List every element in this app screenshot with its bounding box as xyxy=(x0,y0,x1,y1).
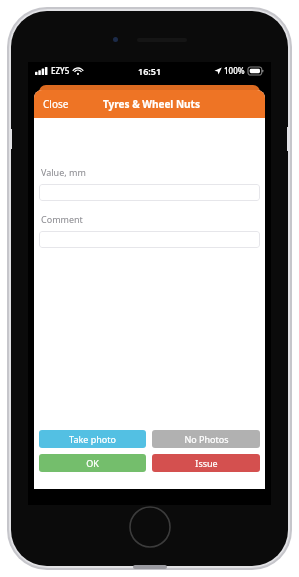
staticText: Issue xyxy=(195,457,218,469)
button[interactable] xyxy=(39,184,260,201)
button[interactable]: Close xyxy=(34,91,78,117)
staticText: Close xyxy=(43,97,69,111)
button[interactable] xyxy=(39,231,260,248)
staticText: EZY5 xyxy=(51,65,70,76)
staticText: Comment xyxy=(41,213,83,225)
staticText: Take photo xyxy=(69,433,116,445)
staticText: 16:51 xyxy=(138,65,162,77)
staticText: No Photos xyxy=(184,433,229,445)
button[interactable]: No Photos xyxy=(152,430,260,448)
button[interactable]: OK xyxy=(39,454,146,472)
button[interactable]: Home xyxy=(129,506,171,548)
staticText: Tyres & Wheel Nuts xyxy=(103,97,200,111)
button[interactable]: Take photo xyxy=(39,430,146,448)
staticText: 100% xyxy=(224,65,245,76)
staticText: Value, mm xyxy=(41,166,86,178)
button[interactable]: Issue xyxy=(152,454,260,472)
staticText: OK xyxy=(86,457,99,469)
